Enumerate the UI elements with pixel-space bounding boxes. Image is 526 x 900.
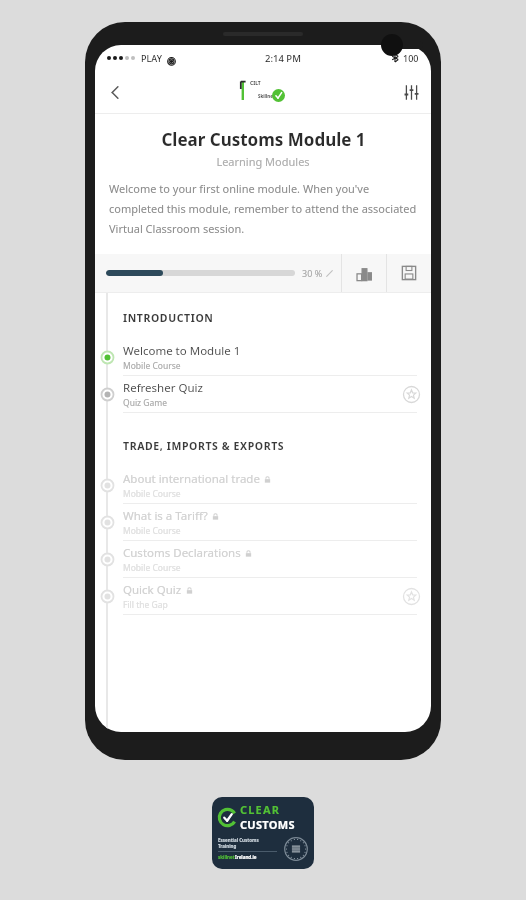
staticText: Fill the Gap [123,599,168,611]
staticText: Essential Customs [218,837,259,843]
button[interactable]: About international trade [95,467,431,504]
staticText: Quick Quiz [123,582,182,598]
staticText: Ireland.ie [235,854,257,860]
staticText: 100 [403,52,419,64]
button[interactable]: Save [387,254,431,292]
staticText: Quiz Game [123,397,167,409]
staticText: About international trade [123,471,260,487]
button[interactable]: Welcome to Module 1 [95,339,431,376]
staticText: CLEAR [240,802,281,817]
button[interactable]: Quick Quiz [95,578,431,615]
button[interactable]: Leaderboard [342,254,386,292]
staticText: 30 % [302,267,323,279]
button[interactable]: Settings [391,72,431,112]
staticText: Mobile Course [123,525,181,537]
button[interactable]: Refresher Quiz [95,376,431,413]
staticText: skillnet [218,854,235,860]
staticText: CILT [250,80,261,87]
staticText: What is a Tariff? [123,508,208,524]
staticText: Mobile Course [123,562,181,574]
staticText: TRADE, IMPORTS & EXPORTS [123,439,285,453]
button[interactable]: Back [95,72,135,112]
button[interactable]: What is a Tariff? [95,504,431,541]
staticText: INTRODUCTION [123,311,214,325]
staticText: Training [218,843,237,849]
staticText: Customs Declarations [123,545,241,561]
staticText: CUSTOMS [240,817,295,832]
staticText: Mobile Course [123,488,181,500]
staticText: PLAY [141,52,162,64]
staticText: Welcome to Module 1 [123,343,241,359]
staticText: Clear Customs Module 1 [161,128,366,151]
staticText: Learning Modules [216,154,310,169]
button[interactable]: Customs Declarations [95,541,431,578]
staticText: 2:14 PM [265,52,301,65]
staticText: Refresher Quiz [123,380,203,396]
staticText: Mobile Course [123,360,181,372]
staticText: Welcome to your first online module. Whe… [109,181,417,236]
staticText: Skillnet [258,93,275,99]
